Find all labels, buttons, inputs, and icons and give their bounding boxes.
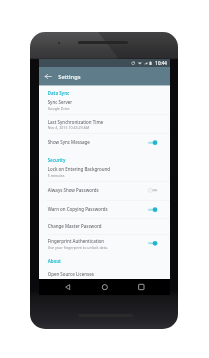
- button[interactable]: Recent apps: [133, 279, 149, 295]
- staticText: Last Synchronization Time: [48, 119, 103, 125]
- button[interactable]: Change Master Password: [39, 222, 170, 230]
- button[interactable]: Open Source Licenses: [39, 271, 170, 279]
- button[interactable]: Back: [41, 70, 55, 83]
- button[interactable]: Back: [60, 279, 76, 295]
- staticText: Sync Server: [48, 100, 72, 106]
- button[interactable]: Last Synchronization Time: [39, 118, 170, 126]
- staticText: Fingerprint Authentication: [48, 238, 104, 244]
- button[interactable]: Sync Server: [39, 99, 170, 107]
- staticText: Settings: [58, 73, 81, 80]
- staticText: About: [48, 259, 61, 265]
- button[interactable]: Fingerprint Authentication: [39, 237, 170, 245]
- button[interactable]: Toggle: [148, 206, 157, 213]
- staticText: 5 minutes: [48, 173, 65, 178]
- staticText: Lock on Entering Background: [48, 166, 110, 172]
- staticText: Data Sync: [48, 91, 69, 97]
- button[interactable]: Always Show Passwords: [39, 186, 170, 194]
- staticText: 10:44: [155, 60, 167, 66]
- button[interactable]: Toggle: [148, 187, 157, 194]
- staticText: Nov 4, 2015 10:43:29 AM: [48, 125, 89, 130]
- button[interactable]: Toggle: [148, 139, 157, 146]
- staticText: Always Show Passwords: [48, 187, 99, 193]
- button[interactable]: Toggle: [148, 240, 157, 247]
- staticText: Security: [48, 157, 66, 163]
- staticText: Show Sync Message: [48, 140, 90, 146]
- staticText: Google Drive: [48, 106, 70, 111]
- button[interactable]: Home: [97, 279, 113, 295]
- button[interactable]: Lock on Entering Background: [39, 165, 170, 173]
- staticText: Warn on Copying Passwords: [48, 207, 108, 213]
- staticText: Use your fingerprint to unlock data.: [48, 245, 108, 250]
- staticText: Change Master Password: [48, 223, 102, 229]
- button[interactable]: Warn on Copying Passwords: [39, 206, 170, 214]
- staticText: Open Source Licenses: [48, 272, 94, 278]
- button[interactable]: Show Sync Message: [39, 139, 170, 147]
